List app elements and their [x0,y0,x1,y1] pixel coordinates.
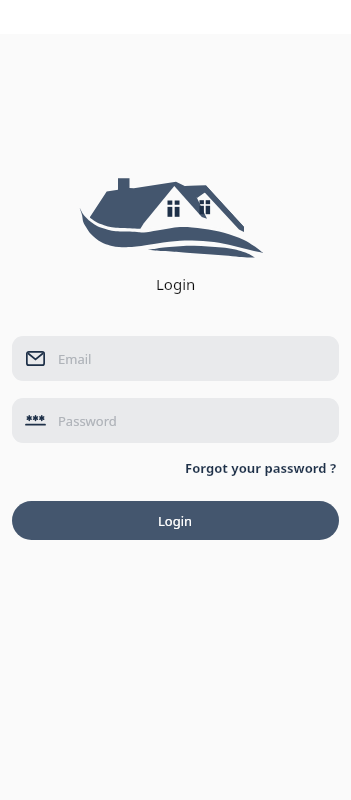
button[interactable]: Password [12,398,339,443]
other: Password [26,413,45,428]
staticText: Login [158,512,193,530]
button[interactable]: Login [12,501,339,540]
button[interactable]: Email [12,336,339,381]
button[interactable]: Forgot your password ? [179,455,343,481]
staticText: Forgot your password ? [185,459,337,477]
other: Email [26,351,45,366]
staticText: Email [58,350,92,368]
staticText: Password [58,412,117,430]
staticText: Login [156,274,196,294]
